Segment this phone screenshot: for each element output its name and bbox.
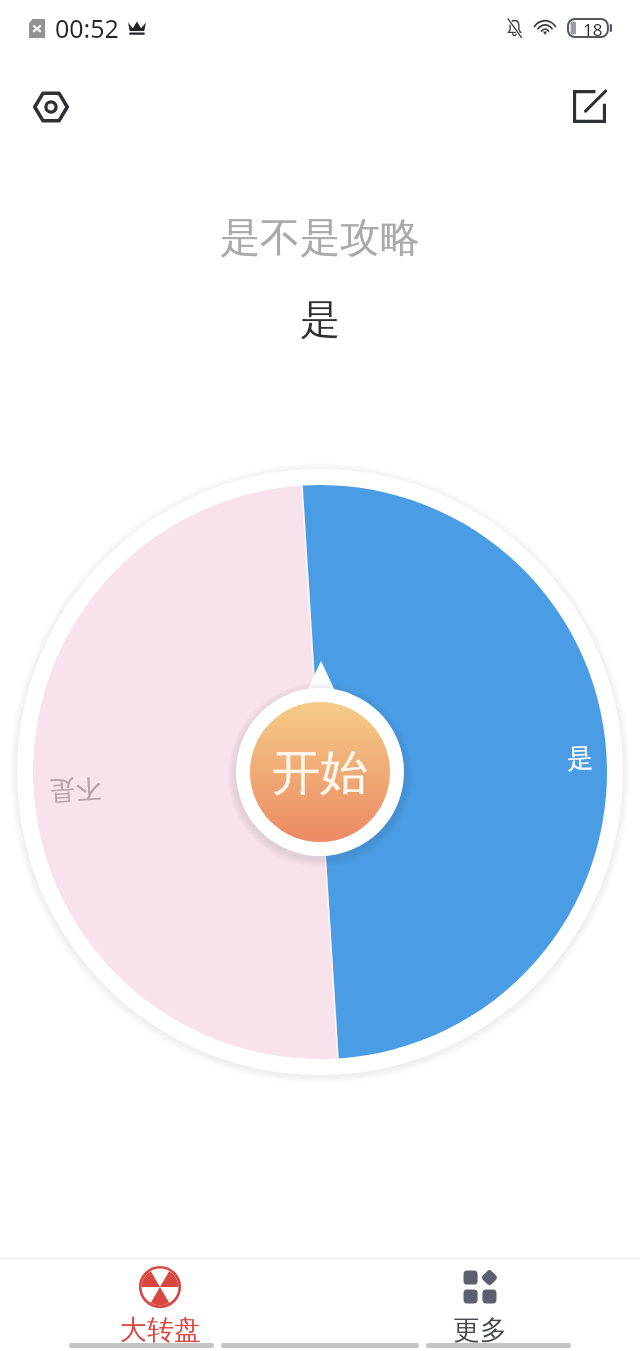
staticText: 是不是攻略 (0, 212, 640, 262)
button[interactable]: 更多 (320, 1254, 640, 1339)
staticText: 是 (0, 294, 640, 344)
staticText: 大转盘 (120, 1313, 201, 1347)
button[interactable]: 大转盘 (0, 1254, 320, 1339)
staticText: 更多 (453, 1313, 507, 1347)
staticText: 00:52 (55, 11, 119, 45)
button[interactable]: 开始 (236, 688, 404, 856)
staticText: 开始 (272, 743, 368, 803)
button[interactable]: Settings (22, 78, 79, 135)
staticText: 是 (566, 741, 594, 776)
staticText: 18 (583, 18, 603, 38)
button[interactable]: Edit (561, 78, 618, 135)
staticText: 不是 (48, 771, 102, 808)
